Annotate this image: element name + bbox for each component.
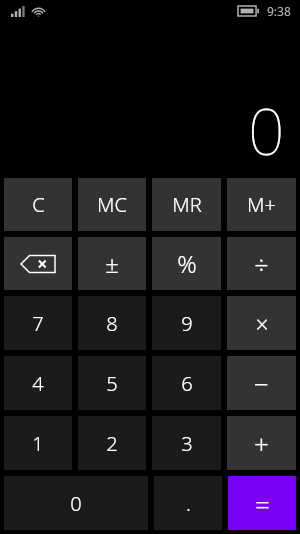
- staticText: 1: [32, 430, 44, 457]
- staticText: =: [255, 486, 270, 521]
- button[interactable]: .: [154, 476, 222, 530]
- staticText: 3: [181, 430, 193, 457]
- staticText: ±: [105, 247, 119, 280]
- staticText: MC: [97, 191, 127, 218]
- staticText: M+: [247, 191, 276, 218]
- staticText: 7: [32, 310, 44, 337]
- button[interactable]: =: [228, 476, 296, 530]
- staticText: .: [186, 490, 191, 517]
- button[interactable]: −: [227, 356, 296, 410]
- staticText: ÷: [254, 247, 269, 281]
- staticText: 9: [181, 310, 193, 337]
- button[interactable]: 9: [152, 296, 221, 350]
- staticText: −: [254, 366, 269, 401]
- button[interactable]: C: [4, 178, 72, 231]
- staticText: %: [177, 247, 197, 280]
- button[interactable]: 7: [4, 296, 72, 350]
- button[interactable]: 3: [152, 416, 221, 470]
- staticText: ×: [255, 308, 269, 339]
- staticText: 4: [32, 370, 44, 397]
- staticText: 9:38: [267, 3, 291, 19]
- staticText: 8: [106, 310, 118, 337]
- staticText: MR: [172, 191, 202, 218]
- staticText: 5: [106, 370, 118, 397]
- button[interactable]: M+: [227, 178, 296, 231]
- button[interactable]: +: [227, 416, 296, 470]
- button[interactable]: Backspace: [4, 237, 72, 290]
- button[interactable]: 1: [4, 416, 72, 470]
- button[interactable]: 8: [78, 296, 146, 350]
- button[interactable]: ÷: [227, 237, 296, 290]
- staticText: 2: [106, 430, 118, 457]
- button[interactable]: 4: [4, 356, 72, 410]
- button[interactable]: 0: [4, 476, 148, 530]
- button[interactable]: 5: [78, 356, 146, 410]
- button[interactable]: ×: [227, 296, 296, 350]
- staticText: 0: [70, 490, 82, 517]
- button[interactable]: 2: [78, 416, 146, 470]
- button[interactable]: ±: [78, 237, 146, 290]
- button[interactable]: MR: [152, 178, 221, 231]
- staticText: 6: [181, 370, 193, 397]
- staticText: +: [254, 426, 269, 461]
- button[interactable]: %: [152, 237, 221, 290]
- button[interactable]: MC: [78, 178, 146, 231]
- button[interactable]: 6: [152, 356, 221, 410]
- staticText: 0: [248, 87, 285, 174]
- staticText: C: [32, 191, 45, 218]
